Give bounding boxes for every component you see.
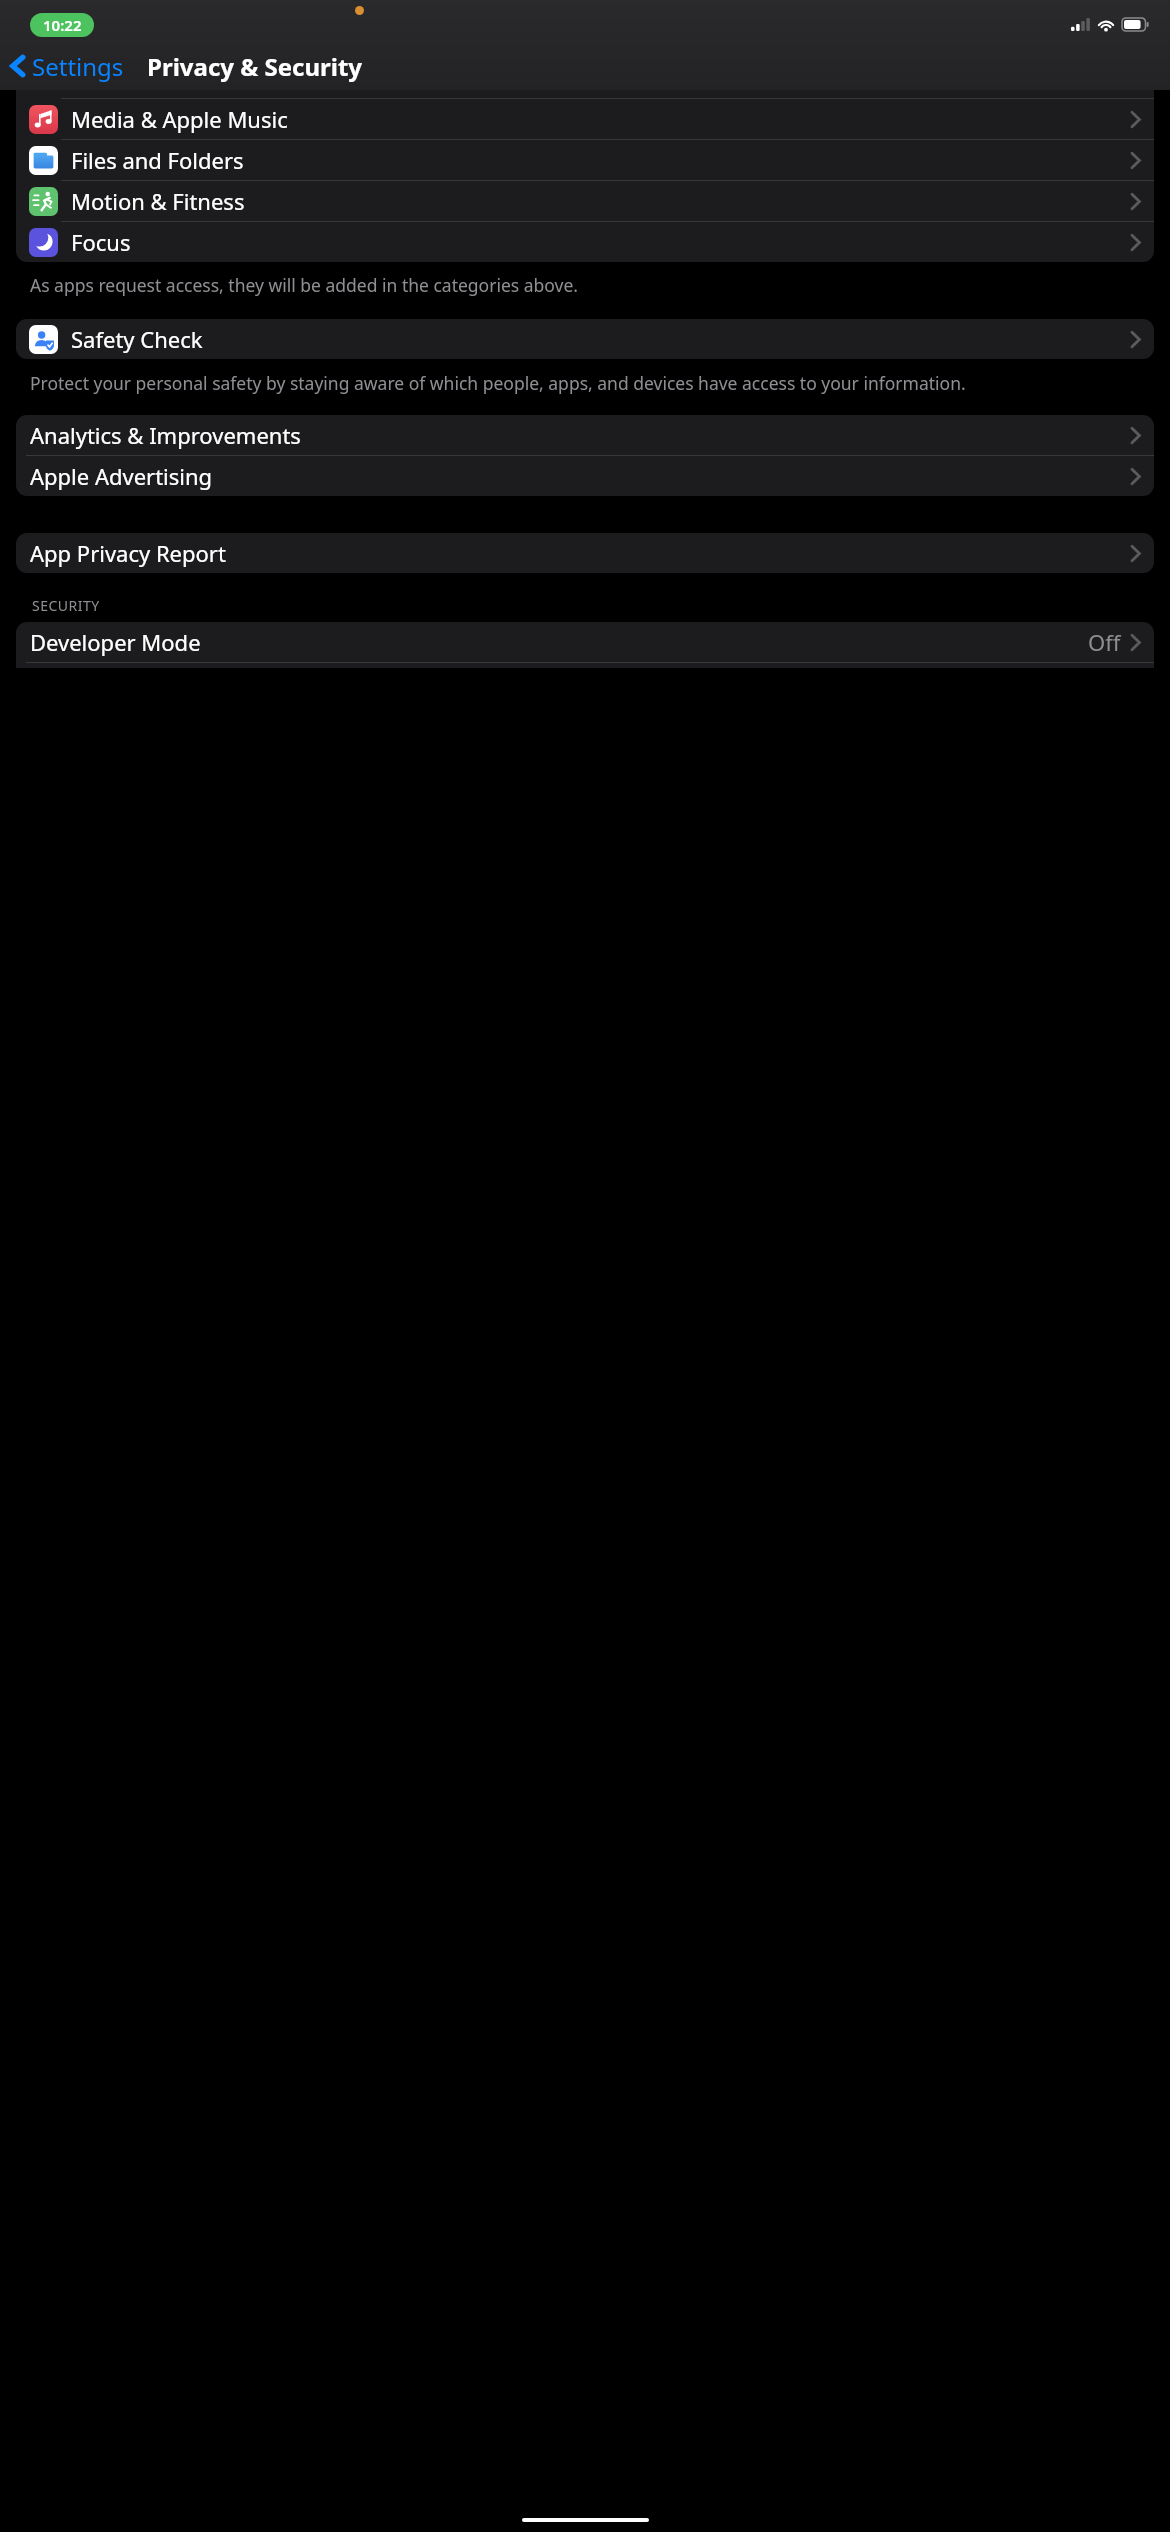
staticText: Developer Mode [30, 627, 201, 657]
button[interactable]: App Privacy Report [16, 533, 1154, 573]
staticText: Safety Check [71, 324, 203, 354]
staticText: Privacy & Security [147, 50, 363, 83]
staticText: Media & Apple Music [71, 104, 288, 134]
button[interactable]: Back to Settings [0, 43, 130, 89]
button[interactable]: Files and Folders [16, 140, 1154, 180]
staticText: Focus [71, 227, 131, 257]
staticText: As apps request access, they will be add… [30, 273, 579, 297]
button[interactable]: Media & Apple Music [16, 99, 1154, 139]
button[interactable]: Motion & Fitness [16, 181, 1154, 221]
staticText: Off [1088, 627, 1121, 657]
button[interactable]: Focus [16, 222, 1154, 262]
button[interactable]: Developer Mode [16, 622, 1154, 662]
button[interactable]: Apple Advertising [16, 456, 1154, 496]
staticText: App Privacy Report [30, 538, 226, 568]
staticText: Apple Advertising [30, 461, 213, 491]
staticText: Analytics & Improvements [30, 420, 301, 450]
button[interactable]: Safety Check [16, 319, 1154, 359]
button[interactable]: Analytics & Improvements [16, 415, 1154, 455]
staticText: Protect your personal safety by staying … [30, 371, 966, 395]
staticText: SECURITY [32, 596, 100, 615]
staticText: 10:22 [43, 15, 82, 35]
staticText: Files and Folders [71, 145, 244, 175]
staticText: Settings [32, 50, 124, 83]
staticText: Motion & Fitness [71, 186, 245, 216]
